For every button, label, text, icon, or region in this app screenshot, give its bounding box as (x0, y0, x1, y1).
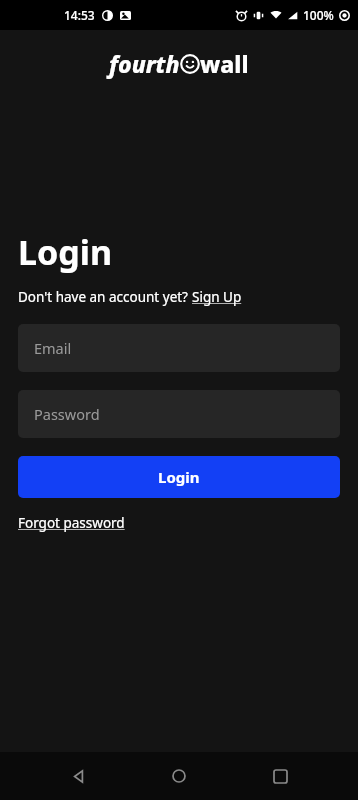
staticText: Sign Up (192, 288, 242, 306)
staticText: Forgot password (18, 514, 125, 532)
staticText: Login (18, 229, 113, 275)
staticText: fourth (109, 48, 180, 79)
staticText: Login (158, 467, 200, 487)
staticText: Password (34, 404, 100, 424)
button[interactable]: Sign Up (192, 288, 242, 306)
button[interactable]: Recent apps (257, 753, 303, 799)
staticText: wall (200, 48, 249, 79)
button[interactable]: Email (18, 324, 340, 372)
staticText: Don't have an account yet? (18, 288, 192, 306)
staticText: Email (34, 338, 72, 358)
staticText: 100% (303, 7, 334, 23)
button[interactable]: Password (18, 390, 340, 438)
button[interactable]: Login (18, 456, 340, 498)
button[interactable]: Forgot password (18, 514, 125, 532)
button[interactable]: Back (55, 753, 101, 799)
staticText: 14:53 (64, 7, 95, 23)
button[interactable]: Home (156, 753, 202, 799)
